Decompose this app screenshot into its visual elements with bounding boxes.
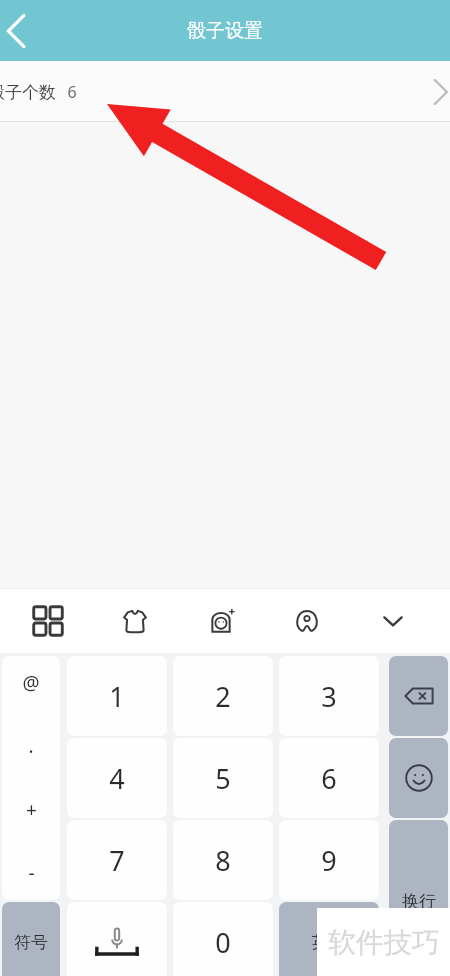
button[interactable]: Space bbox=[67, 902, 167, 976]
button[interactable]: Emoji bbox=[389, 738, 448, 818]
button[interactable]: 0 bbox=[173, 902, 273, 976]
staticText: 0 bbox=[215, 924, 231, 961]
staticText: 4 bbox=[109, 760, 125, 797]
staticText: 符号 bbox=[14, 932, 48, 953]
button[interactable]: 9 bbox=[279, 820, 379, 900]
button[interactable]: 1 bbox=[67, 656, 167, 736]
staticText: 1 bbox=[109, 678, 125, 715]
button[interactable]: 换行 bbox=[389, 820, 448, 976]
staticText: + bbox=[26, 797, 37, 823]
staticText: - bbox=[28, 860, 35, 886]
staticText: 骰子个数 bbox=[0, 82, 56, 103]
button[interactable]: Stickers bbox=[178, 588, 264, 653]
button[interactable]: Back bbox=[0, 5, 38, 57]
button[interactable]: 2 bbox=[173, 656, 273, 736]
button[interactable]: Backspace bbox=[389, 656, 448, 736]
button[interactable]: 8 bbox=[173, 820, 273, 900]
button[interactable]: 符号 bbox=[2, 902, 60, 976]
button[interactable]: Keyboard layouts bbox=[4, 588, 91, 653]
button[interactable]: 4 bbox=[67, 738, 167, 818]
staticText: 6 bbox=[67, 81, 77, 103]
button[interactable]: 5 bbox=[173, 738, 273, 818]
staticText: 换行 bbox=[402, 891, 436, 912]
staticText: 2 bbox=[215, 678, 231, 715]
staticText: 6 bbox=[321, 760, 337, 797]
staticText: 英文 bbox=[312, 932, 346, 953]
staticText: @ bbox=[22, 670, 40, 696]
staticText: 软件技巧 bbox=[328, 925, 440, 960]
staticText: . bbox=[28, 733, 34, 759]
button[interactable]: Account bbox=[264, 588, 350, 653]
button[interactable]: @ bbox=[2, 656, 60, 900]
staticText: 5 bbox=[215, 760, 231, 797]
staticText: 3 bbox=[321, 678, 337, 715]
button[interactable]: 7 bbox=[67, 820, 167, 900]
button[interactable]: 骰子个数 bbox=[0, 61, 450, 122]
staticText: 7 bbox=[109, 842, 125, 879]
button[interactable]: 3 bbox=[279, 656, 379, 736]
button[interactable]: Hide keyboard bbox=[350, 588, 436, 653]
staticText: 8 bbox=[215, 842, 231, 879]
button[interactable]: Skins bbox=[91, 588, 178, 653]
button[interactable]: 英文 bbox=[279, 902, 379, 976]
button[interactable]: 6 bbox=[279, 738, 379, 818]
staticText: 骰子设置 bbox=[187, 19, 263, 43]
staticText: 9 bbox=[321, 842, 337, 879]
